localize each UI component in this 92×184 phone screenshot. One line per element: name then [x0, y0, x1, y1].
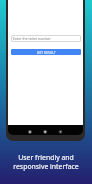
staticText: Enter the ticket number — [13, 36, 51, 41]
button[interactable]: GET RESULT — [11, 49, 81, 55]
staticText: GET RESULT — [37, 51, 56, 55]
staticText: User friendly and responsive interface — [13, 153, 79, 171]
button[interactable]: Enter the ticket number — [11, 35, 81, 42]
